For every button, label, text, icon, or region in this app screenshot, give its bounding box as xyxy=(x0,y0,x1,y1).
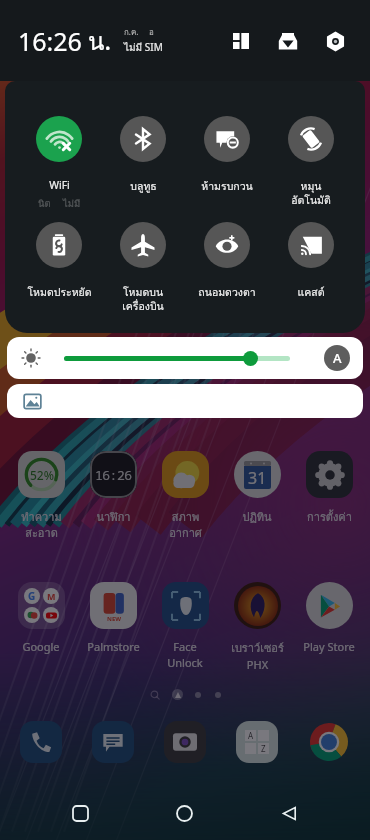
staticText: โหมดประหยัด xyxy=(27,284,92,301)
staticText: Z xyxy=(261,743,266,754)
staticText: บลูทูธ xyxy=(130,178,157,195)
button[interactable]: โหมดบน เครื่องบิน xyxy=(101,222,185,315)
staticText: ก.ค. อ xyxy=(124,26,154,39)
button[interactable]: WiFi xyxy=(17,116,101,192)
button[interactable]: สภาพ อากาศ xyxy=(149,451,221,542)
button[interactable]: Brightness xyxy=(7,337,363,379)
staticText: แคสต์ xyxy=(297,284,325,301)
staticText: ห้ามรบกวน xyxy=(201,178,253,195)
staticText: ถนอมดวงตา xyxy=(198,284,256,301)
staticText: นาฬิกา xyxy=(96,508,131,525)
staticText: Play Store xyxy=(303,639,355,654)
staticText: Face Unlock xyxy=(167,639,203,671)
button[interactable]: App xyxy=(90,719,136,765)
staticText: NEW xyxy=(107,615,122,623)
staticText: 31 xyxy=(248,467,267,489)
button[interactable]: แคสต์ xyxy=(269,222,353,301)
button[interactable]: App xyxy=(18,719,64,765)
staticText: ปฏิทิน xyxy=(242,508,272,525)
button[interactable]: Face Unlock xyxy=(149,582,221,671)
button[interactable]: โหมดประหยัด xyxy=(17,222,101,301)
button[interactable]: หมุน อัตโนมัติ xyxy=(269,116,353,209)
button[interactable]: Settings xyxy=(319,25,351,57)
staticText: M xyxy=(47,590,56,602)
button[interactable]: Auto brightness xyxy=(324,345,350,371)
staticText: 52% xyxy=(30,467,54,483)
button[interactable]: 31 xyxy=(221,451,293,525)
button[interactable]: เบราว์เซอร์ PHX xyxy=(221,582,293,673)
button[interactable]: Recents xyxy=(56,789,104,837)
button[interactable]: Home xyxy=(160,789,208,837)
staticText: A xyxy=(248,730,254,741)
staticText: A xyxy=(333,349,342,367)
button[interactable]: App xyxy=(162,719,208,765)
staticText: หมุน อัตโนมัติ xyxy=(291,178,331,209)
staticText: นิต ไม่มี xyxy=(38,196,81,211)
staticText: WiFi xyxy=(49,178,70,192)
staticText: ทำความ สะอาด xyxy=(21,508,62,542)
button[interactable]: Back xyxy=(265,789,313,837)
button[interactable]: ถนอมดวงตา xyxy=(185,222,269,301)
button[interactable]: Media output xyxy=(7,384,363,418)
staticText: Palmstore xyxy=(87,639,140,654)
staticText: 16:26 xyxy=(95,466,132,484)
staticText: Google xyxy=(22,639,60,654)
button[interactable]: Split screen xyxy=(225,25,257,57)
staticText: เบราว์เซอร์ PHX xyxy=(231,639,284,673)
staticText: 16:26 xyxy=(18,24,82,58)
button[interactable]: App xyxy=(306,719,352,765)
button[interactable]: ห้ามรบกวน xyxy=(185,116,269,195)
staticText: ไม่มี SIM xyxy=(124,40,163,56)
button[interactable]: 52% xyxy=(5,451,77,542)
staticText: สภาพ อากาศ xyxy=(169,508,202,542)
staticText: น. xyxy=(88,22,111,60)
button[interactable]: การตั้งค่า xyxy=(293,451,365,525)
button[interactable]: NEW xyxy=(77,582,149,654)
button[interactable]: G xyxy=(5,582,77,654)
staticText: โหมดบน เครื่องบิน xyxy=(122,284,164,315)
button[interactable]: 16:26 xyxy=(77,451,149,525)
button[interactable]: Inbox xyxy=(272,25,304,57)
button[interactable]: App xyxy=(234,719,280,765)
staticText: การตั้งค่า xyxy=(307,508,352,525)
staticText: G xyxy=(28,589,36,603)
button[interactable]: บลูทูธ xyxy=(101,116,185,195)
button[interactable]: Play Store xyxy=(293,582,365,654)
